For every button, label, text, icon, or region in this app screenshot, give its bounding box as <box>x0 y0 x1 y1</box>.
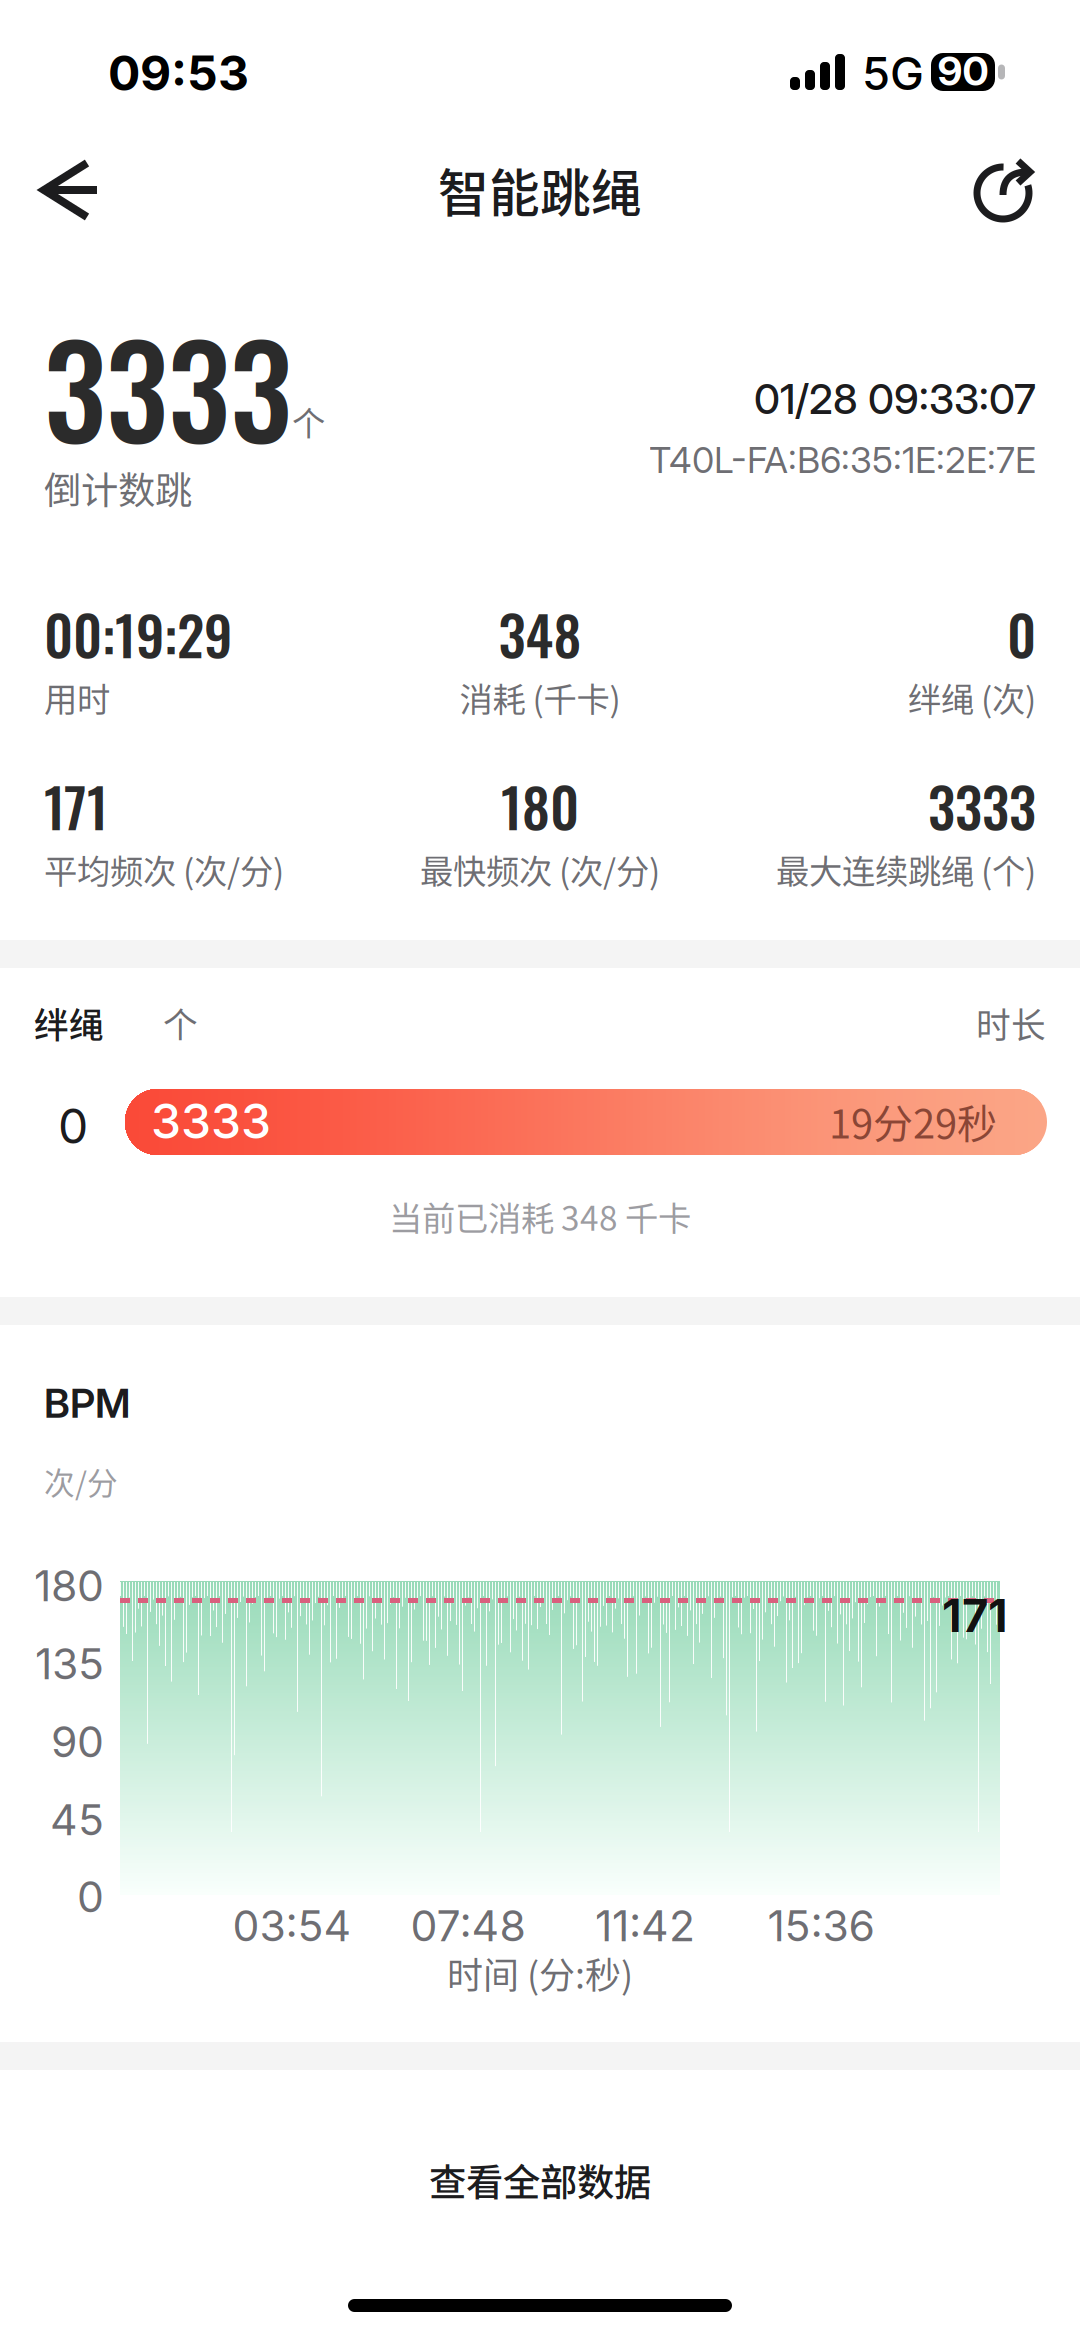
staticText: 03:54 <box>232 1900 351 1952</box>
staticText: 348 <box>498 593 581 674</box>
staticText: 135 <box>35 1638 104 1690</box>
staticText: 最大连续跳绳 (个) <box>776 845 1036 893</box>
staticText: 当前已消耗 348 千卡 <box>389 1192 691 1240</box>
staticText: 绊绳 <box>34 998 104 1048</box>
staticText: 时长 <box>976 998 1046 1048</box>
staticText: 3333 <box>928 765 1036 846</box>
staticText: 171 <box>942 1588 1008 1643</box>
staticText: 次/分 <box>44 1459 118 1503</box>
staticText: 0 <box>58 1097 88 1155</box>
staticText: 45 <box>50 1794 104 1846</box>
staticText: 个 <box>292 397 325 445</box>
staticText: 180 <box>34 1560 104 1612</box>
staticText: 11:42 <box>595 1900 695 1952</box>
staticText: 0 <box>77 1871 104 1923</box>
staticText: 倒计数跳 <box>44 461 192 515</box>
button[interactable]: 查看全部数据 <box>0 2120 1080 2240</box>
staticText: 智能跳绳 <box>438 153 642 227</box>
staticText: 平均频次 (次/分) <box>44 845 284 893</box>
button[interactable]: Share <box>950 138 1054 242</box>
staticText: 0 <box>1007 593 1036 674</box>
staticText: 19分29秒 <box>829 1092 997 1150</box>
staticText: 180 <box>501 765 579 846</box>
staticText: 3333 <box>151 1092 271 1150</box>
staticText: 09:53 <box>108 44 249 102</box>
staticText: T40L-FA:B6:35:1E:2E:7E <box>649 438 1036 482</box>
staticText: 01/28 09:33:07 <box>754 374 1036 424</box>
staticText: 最快频次 (次/分) <box>420 845 660 893</box>
staticText: BPM <box>44 1379 130 1427</box>
button[interactable]: Back <box>16 138 124 242</box>
staticText: 绊绳 (次) <box>908 673 1036 721</box>
staticText: 查看全部数据 <box>429 2153 651 2207</box>
staticText: 07:48 <box>410 1900 525 1952</box>
staticText: 00:19:29 <box>44 593 232 674</box>
staticText: 171 <box>44 765 108 846</box>
staticText: 5G <box>862 46 924 101</box>
staticText: 90 <box>937 47 988 95</box>
staticText: 时间 (分:秒) <box>447 1947 633 1999</box>
staticText: 用时 <box>44 673 110 721</box>
staticText: 15:36 <box>767 1900 874 1952</box>
staticText: 消耗 (千卡) <box>459 673 620 721</box>
staticText: 个 <box>163 998 198 1048</box>
staticText: 90 <box>51 1716 104 1768</box>
staticText: 3333 <box>44 293 292 479</box>
